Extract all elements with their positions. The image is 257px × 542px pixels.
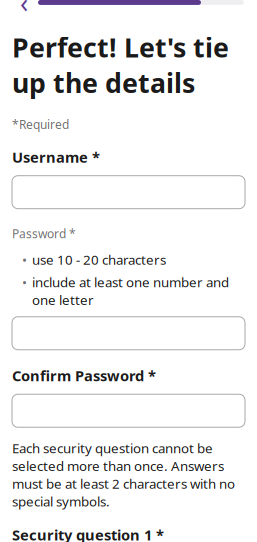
button[interactable]: Username [0,176,245,209]
staticText: *Required [12,116,69,132]
button[interactable]: Back [10,0,38,16]
staticText: • [22,273,27,291]
staticText: Perfect! Let's tie up the details [12,29,229,100]
staticText: • [22,251,27,268]
staticText: ‹ [20,0,28,20]
staticText: use 10 - 20 characters [32,251,166,268]
staticText: Confirm Password * [12,366,156,385]
staticText: Security question 1 * [12,525,164,542]
button[interactable]: Confirm Password [0,394,245,427]
staticText: include at least one number and one lett… [32,273,229,309]
staticText: Username * [12,147,100,167]
staticText: Each security question cannot be selecte… [12,439,235,510]
staticText: Password * [12,226,76,242]
button[interactable]: Password [0,317,245,350]
